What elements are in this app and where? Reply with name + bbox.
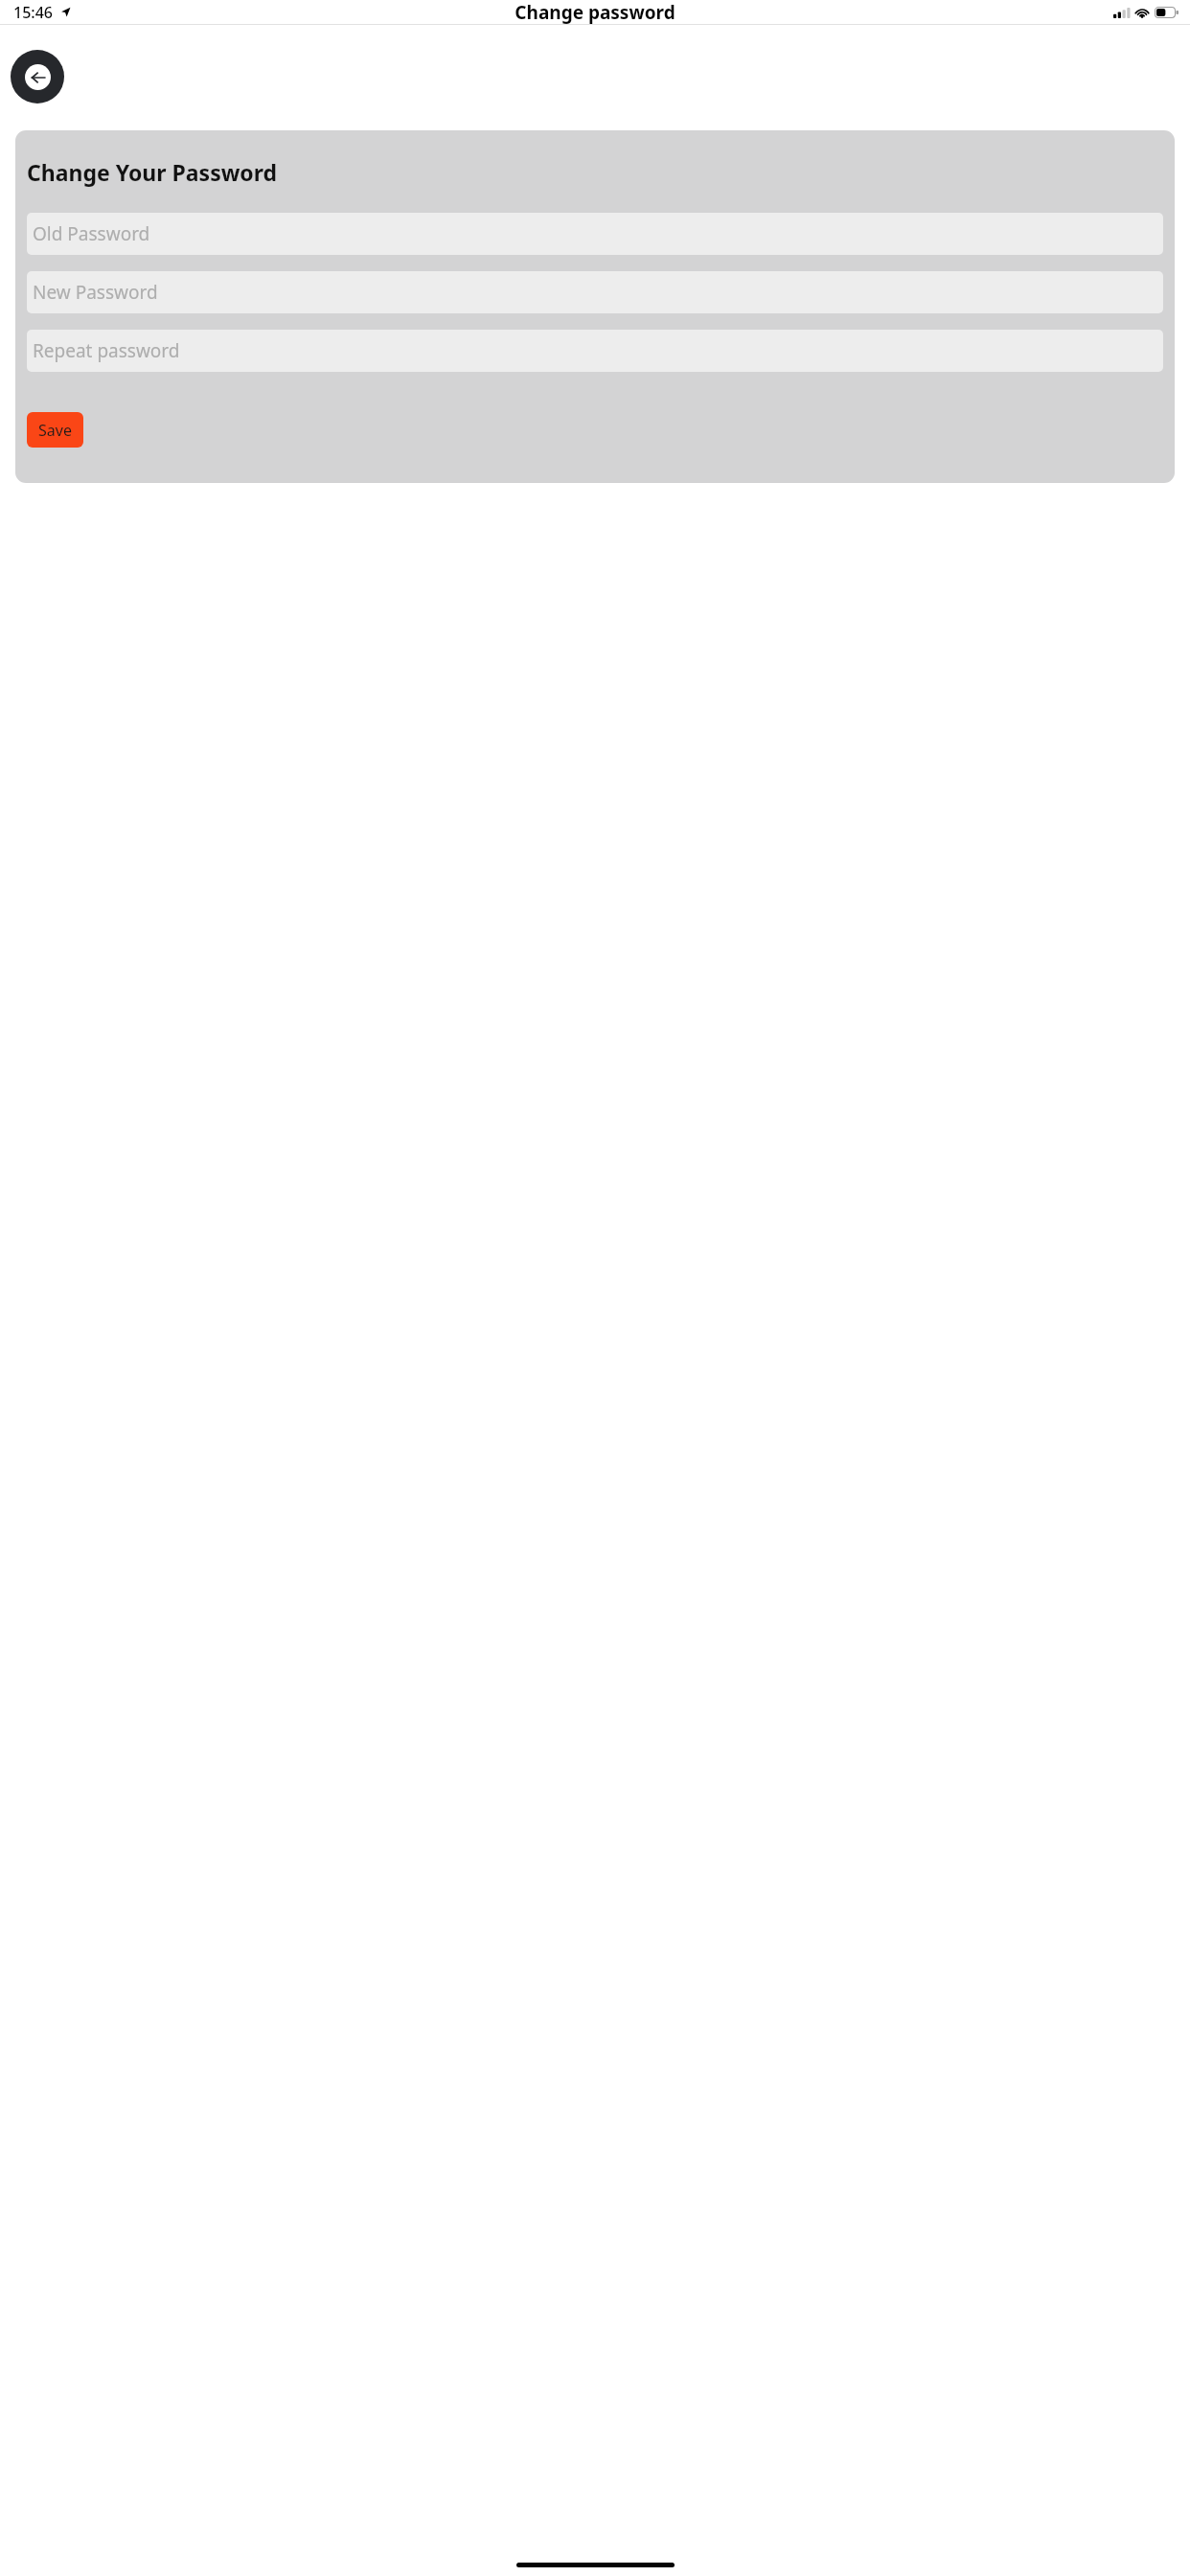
- button[interactable]: Save: [27, 412, 83, 448]
- button[interactable]: New Password: [27, 271, 1163, 313]
- staticText: Repeat password: [33, 338, 180, 363]
- staticText: New Password: [33, 280, 158, 305]
- button[interactable]: Back: [11, 50, 64, 103]
- staticText: Old Password: [33, 221, 150, 246]
- staticText: Change Your Password: [27, 157, 278, 187]
- button[interactable]: Old Password: [27, 213, 1163, 255]
- button[interactable]: Repeat password: [27, 330, 1163, 372]
- staticText: 15:46: [13, 2, 53, 23]
- staticText: Save: [38, 420, 72, 441]
- staticText: Change password: [515, 0, 675, 24]
